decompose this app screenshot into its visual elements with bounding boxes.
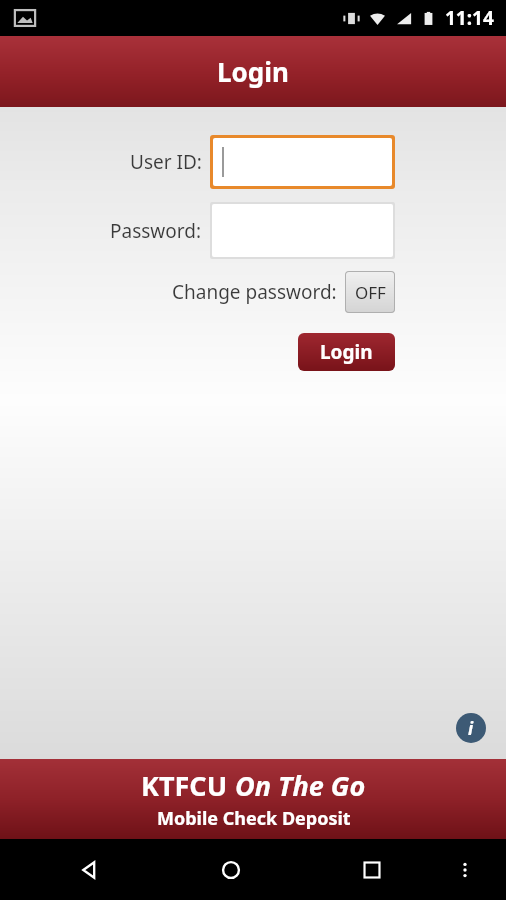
button[interactable]: Home [160, 839, 301, 900]
button[interactable]: More options [442, 839, 488, 900]
staticText: User ID: [130, 149, 202, 175]
staticText: i [468, 717, 474, 740]
staticText: KTFCU [141, 767, 235, 804]
button[interactable]: Back [18, 839, 160, 900]
staticText: Mobile Check Deposit [157, 806, 351, 831]
staticText: Login [320, 339, 373, 365]
staticText: Password: [110, 218, 202, 244]
staticText: On The Go [235, 767, 366, 804]
button[interactable]: Recent apps [301, 839, 442, 900]
button[interactable]: Information [456, 713, 486, 743]
button[interactable]: OFF [345, 271, 395, 313]
staticText: OFF [355, 281, 386, 304]
staticText: Change password: [172, 279, 337, 305]
staticText: 11:14 [445, 5, 494, 31]
button[interactable] [213, 138, 392, 186]
button[interactable]: Login [298, 333, 395, 371]
staticText: Login [217, 54, 289, 89]
